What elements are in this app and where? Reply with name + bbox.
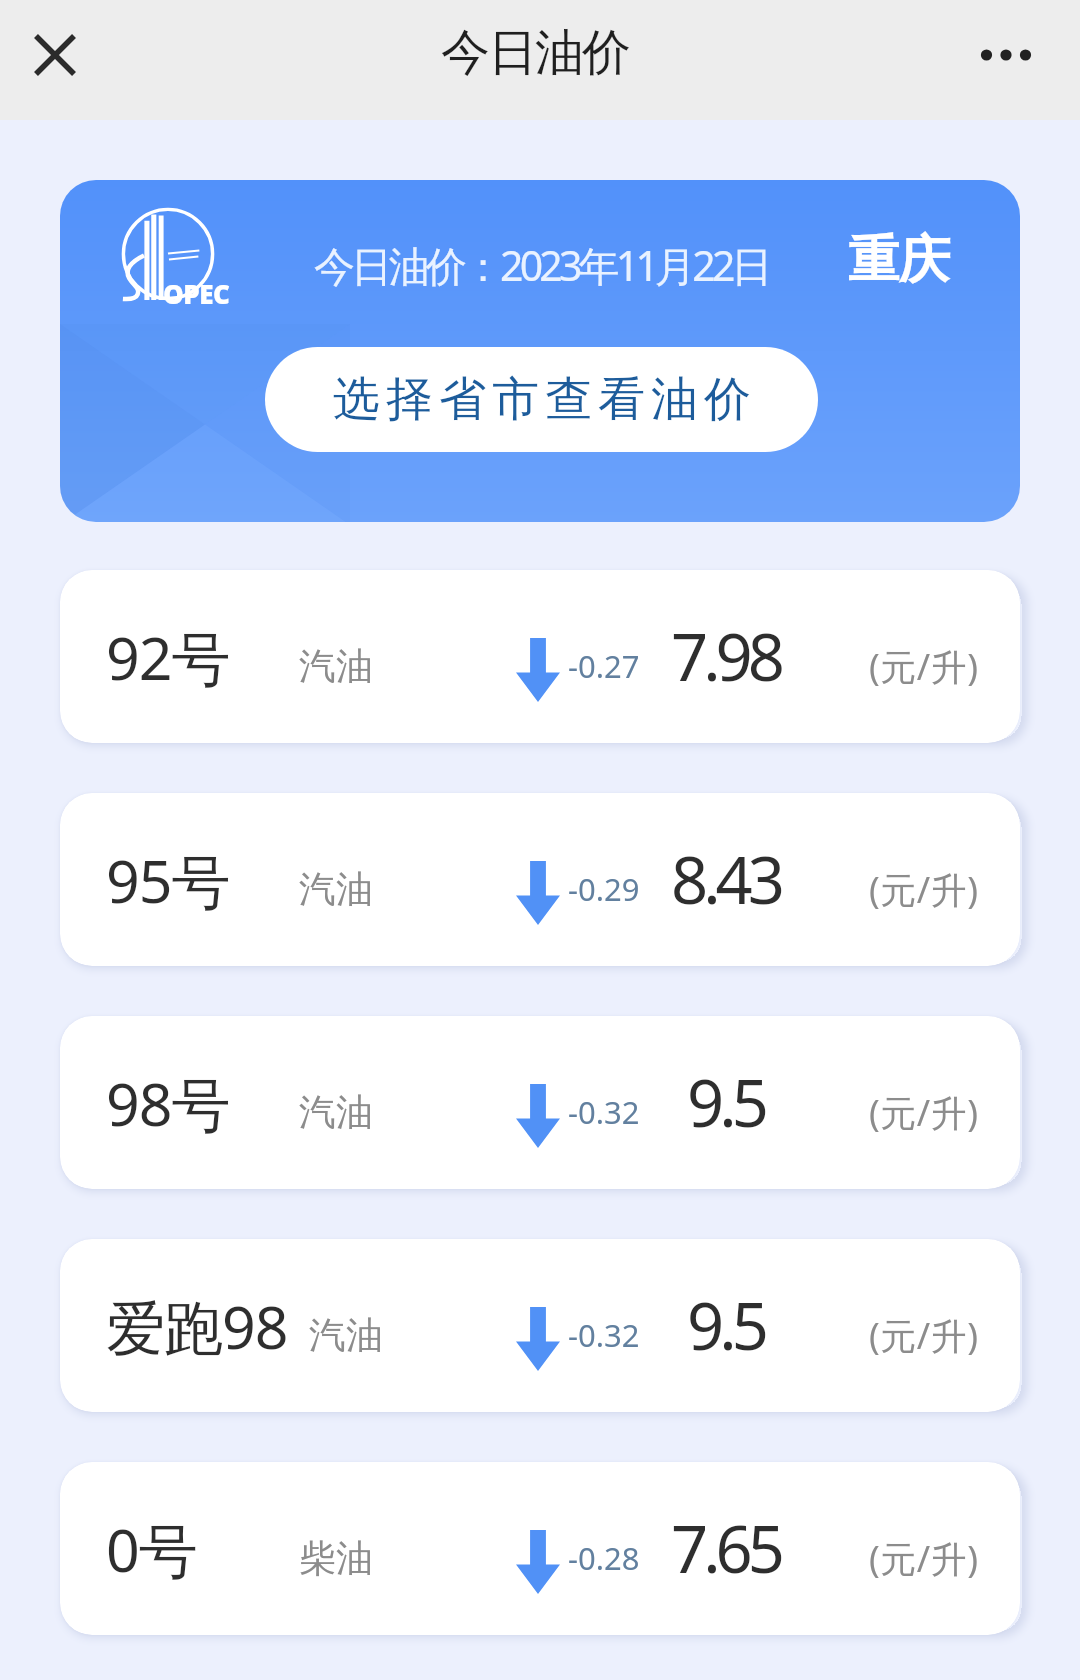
button[interactable]: 92号 (60, 570, 1020, 743)
staticText: 7.98 (671, 612, 780, 701)
staticText: 0号 (106, 1509, 197, 1590)
staticText: -0.27 (568, 645, 640, 687)
staticText: 选择省市查看油价 (330, 370, 754, 429)
staticText: (元/升) (869, 642, 979, 691)
staticText: -0.32 (568, 1091, 640, 1133)
staticText: 98号 (106, 1063, 230, 1144)
staticText: 汽油 (309, 1312, 383, 1359)
staticText: 95号 (106, 840, 230, 921)
button[interactable]: 选择省市查看油价 (265, 347, 818, 452)
staticText: 92号 (106, 617, 230, 698)
button[interactable]: OPEC (60, 180, 1020, 522)
staticText: 9.5 (687, 1058, 764, 1147)
staticText: -0.32 (568, 1314, 640, 1356)
staticText: OPEC (163, 276, 230, 311)
staticText: (元/升) (869, 1311, 979, 1360)
staticText: 重庆 (848, 228, 950, 292)
button[interactable]: 0号 (60, 1462, 1020, 1635)
staticText: 9.5 (687, 1281, 764, 1370)
staticText: 7.65 (671, 1504, 780, 1593)
staticText: (元/升) (869, 1534, 979, 1583)
staticText: 汽油 (299, 1089, 373, 1136)
staticText: 今日油价 (442, 22, 630, 84)
button[interactable]: 98号 (60, 1016, 1020, 1189)
staticText: 汽油 (299, 643, 373, 690)
staticText: (元/升) (869, 865, 979, 914)
button[interactable]: 95号 (60, 793, 1020, 966)
staticText: 柴油 (299, 1535, 373, 1582)
staticText: 今日油价：2023年11月22日 (314, 237, 769, 293)
staticText: 爱跑98 (106, 1286, 288, 1367)
staticText: -0.29 (568, 868, 640, 910)
button[interactable]: Close (16, 16, 93, 93)
staticText: -0.28 (568, 1537, 640, 1579)
staticText: 汽油 (299, 866, 373, 913)
button[interactable]: More options (967, 16, 1044, 93)
staticText: 8.43 (671, 835, 780, 924)
button[interactable]: 爱跑98 (60, 1239, 1020, 1412)
staticText: (元/升) (869, 1088, 979, 1137)
